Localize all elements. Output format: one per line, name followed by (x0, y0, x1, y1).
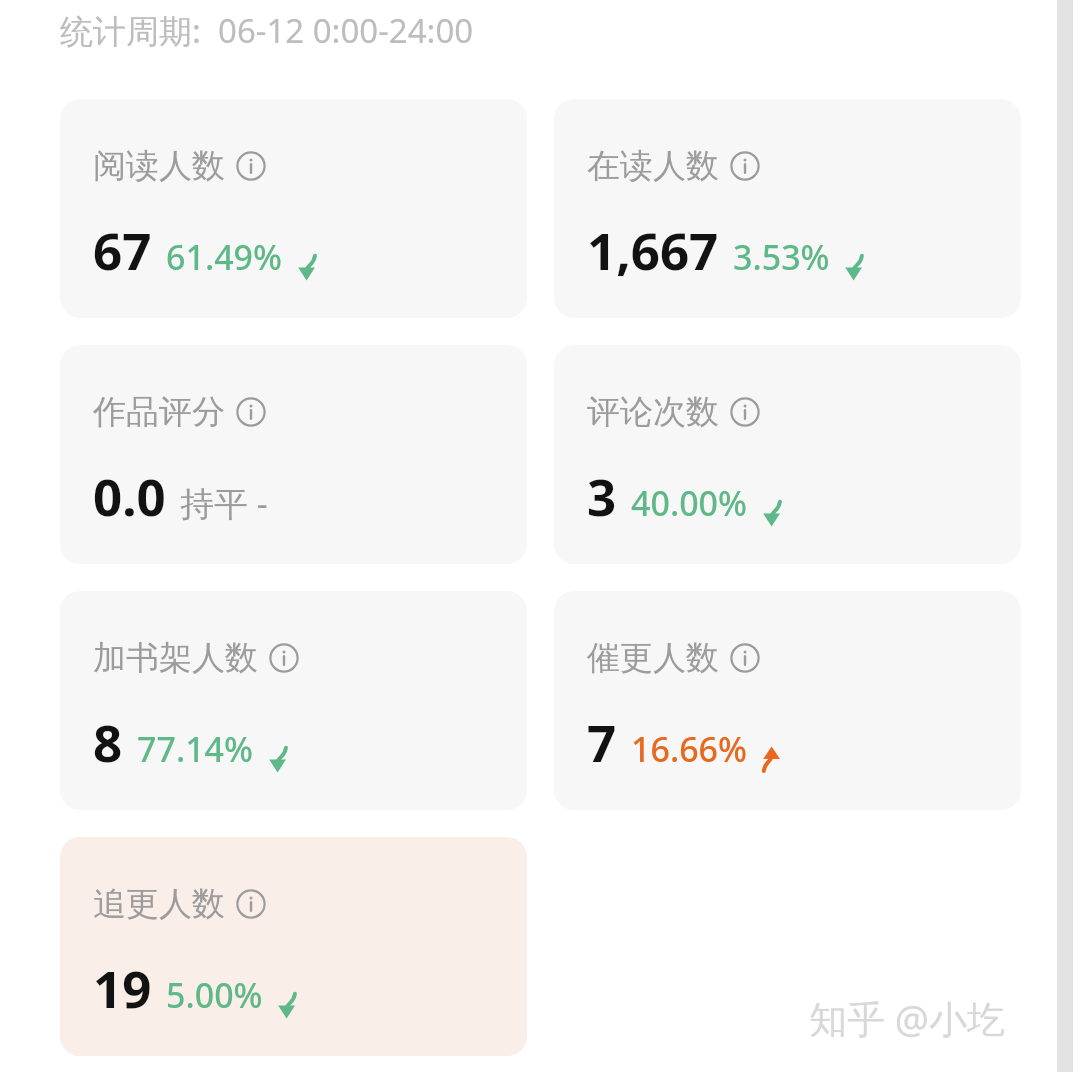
button[interactable]: 阅读人数 (60, 99, 527, 318)
staticText: 61.49% (166, 234, 283, 280)
staticText: 在读人数 (587, 145, 719, 187)
staticText: 0.0 (93, 461, 166, 530)
staticText: 8 (93, 707, 123, 776)
staticText: 催更人数 (587, 637, 719, 679)
staticText: 阅读人数 (93, 145, 225, 187)
staticText: 40.00% (631, 480, 748, 526)
staticText: 知乎 @小圪 (808, 992, 1005, 1044)
staticText: 作品评分 (93, 391, 225, 433)
staticText: 统计周期: 06-12 0:00-24:00 (60, 8, 474, 53)
staticText: 67 (93, 215, 152, 284)
button[interactable]: 作品评分 (60, 345, 527, 564)
button[interactable]: 追更人数 (60, 837, 527, 1056)
staticText: 19 (93, 953, 152, 1022)
staticText: 5.00% (166, 972, 263, 1018)
staticText: 评论次数 (587, 391, 719, 433)
staticText: 加书架人数 (93, 637, 258, 679)
staticText: 16.66% (631, 726, 748, 772)
button[interactable]: 催更人数 (554, 591, 1021, 810)
staticText: 7 (587, 707, 617, 776)
staticText: 3.53% (733, 234, 830, 280)
staticText: 追更人数 (93, 883, 225, 925)
staticText: 持平 - (180, 480, 268, 526)
staticText: 77.14% (137, 726, 254, 772)
button[interactable]: 评论次数 (554, 345, 1021, 564)
staticText: 3 (587, 461, 617, 530)
button[interactable]: 加书架人数 (60, 591, 527, 810)
button[interactable]: 在读人数 (554, 99, 1021, 318)
staticText: 1,667 (587, 215, 719, 284)
